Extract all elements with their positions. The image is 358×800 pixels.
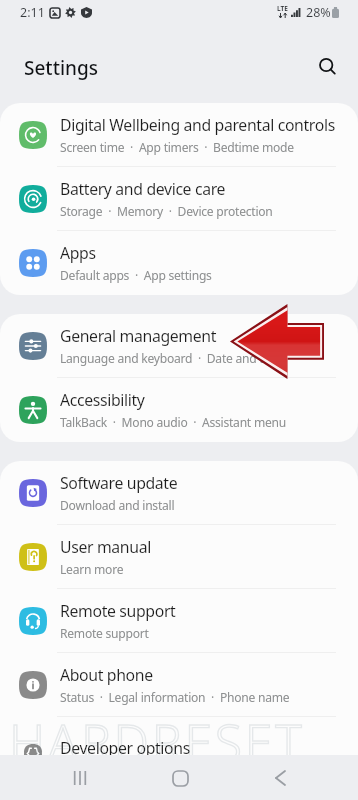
staticText: Status · Legal information · Phone name <box>60 689 290 705</box>
staticText: About phone <box>60 664 153 686</box>
staticText: Download and install <box>60 497 175 513</box>
staticText: 2:11 <box>20 4 45 21</box>
staticText: Remote support <box>60 600 176 622</box>
button[interactable]: User manual <box>0 525 358 589</box>
button[interactable]: Search <box>310 49 346 85</box>
staticText: Battery and device care <box>60 178 226 200</box>
staticText: Screen time · App timers · Bedtime mode <box>60 139 294 155</box>
button[interactable]: Home <box>158 756 202 800</box>
staticText: Settings <box>24 55 98 81</box>
staticText: Storage · Memory · Device protection <box>60 203 273 219</box>
staticText: Remote support <box>60 625 149 641</box>
staticText: Apps <box>60 242 96 264</box>
button[interactable]: General management <box>0 314 358 378</box>
button[interactable]: Recents <box>58 756 102 800</box>
staticText: TalkBack · Mono audio · Assistant menu <box>60 414 286 430</box>
staticText: User manual <box>60 536 151 558</box>
staticText: Accessibility <box>60 389 145 411</box>
staticText: Digital Wellbeing and parental controls <box>60 114 335 136</box>
staticText: Developer options <box>60 737 190 759</box>
button[interactable]: Developer options <box>0 717 358 781</box>
staticText: Software update <box>60 472 178 494</box>
button[interactable]: Back <box>258 756 302 800</box>
button[interactable]: Software update <box>0 461 358 525</box>
button[interactable]: Apps <box>0 231 358 295</box>
staticText: Default apps · App settings <box>60 267 212 283</box>
staticText: 28% <box>306 4 331 21</box>
staticText: Language and keyboard · Date and time <box>60 350 284 366</box>
button[interactable]: Digital Wellbeing and parental controls <box>0 103 358 167</box>
staticText: HARDRESET <box>9 708 305 776</box>
staticText: INFO <box>287 753 336 779</box>
staticText: LTE <box>277 4 288 13</box>
staticText: General management <box>60 325 217 347</box>
button[interactable]: About phone <box>0 653 358 717</box>
button[interactable]: Remote support <box>0 589 358 653</box>
button[interactable]: Battery and device care <box>0 167 358 231</box>
staticText: Learn more <box>60 561 124 577</box>
button[interactable]: Accessibility <box>0 378 358 442</box>
